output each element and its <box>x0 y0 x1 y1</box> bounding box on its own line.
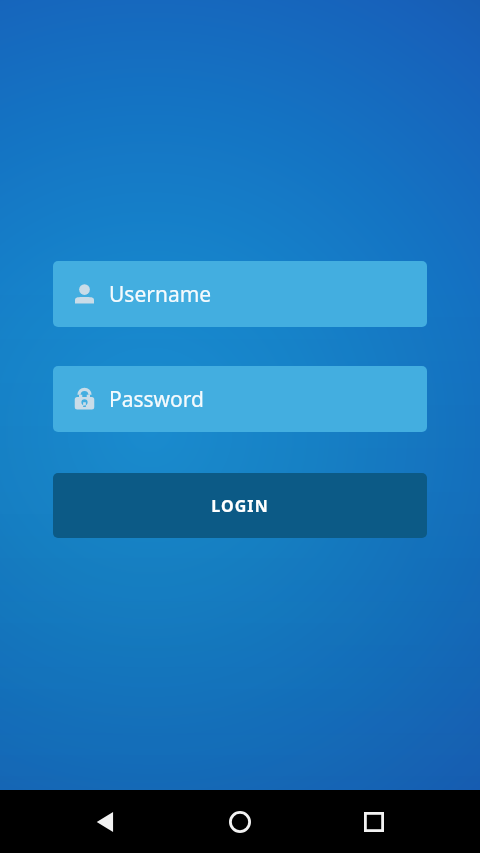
staticText: LOGIN <box>211 495 269 517</box>
button[interactable]: Back <box>78 794 134 850</box>
button[interactable]: Recent apps <box>346 794 402 850</box>
button[interactable]: LOGIN <box>53 473 427 538</box>
button[interactable]: Username <box>53 261 427 327</box>
button[interactable]: Password <box>53 366 427 432</box>
staticText: Password <box>109 385 204 414</box>
button[interactable]: Home <box>212 794 268 850</box>
staticText: Username <box>109 280 212 309</box>
